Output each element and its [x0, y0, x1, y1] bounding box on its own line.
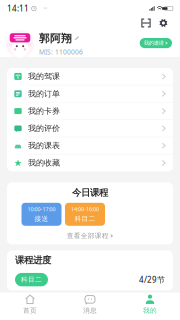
button[interactable]: 消息 [60, 292, 120, 320]
staticText: 我的评价 [28, 123, 60, 133]
staticText: 我的驾课 [28, 71, 60, 81]
staticText: MIS: 1100006 [39, 47, 83, 56]
button[interactable]: 我的评价 [7, 120, 173, 137]
staticText: 10:00-17:00 [27, 206, 55, 213]
button[interactable]: 我的 [120, 292, 180, 320]
staticText: 我的邀请 [144, 40, 164, 46]
button[interactable]: 设置 [159, 18, 168, 28]
staticText: 14:00-16:00 [71, 206, 99, 213]
staticText: 我的订单 [28, 89, 60, 99]
button[interactable]: 查看全部课程 [67, 232, 113, 240]
staticText: 查看全部课程 [67, 232, 109, 240]
staticText: 科目二 [74, 215, 95, 223]
button[interactable]: 10:00-17:00 [21, 203, 61, 226]
staticText: 我的收藏 [28, 158, 60, 168]
staticText: 课程进度 [15, 254, 51, 266]
staticText: 郭阿翔 [39, 32, 72, 45]
button[interactable]: 首页 [0, 292, 60, 320]
staticText: 14:11 [7, 3, 29, 14]
button[interactable]: 我的邀请 [140, 38, 172, 48]
staticText: 我的 [143, 307, 157, 315]
staticText: 首页 [23, 307, 37, 315]
staticText: 我的卡券 [28, 106, 60, 116]
staticText: 接送 [34, 215, 48, 223]
button[interactable]: 我的课表 [7, 137, 173, 154]
staticText: 4/29节 [139, 274, 165, 285]
button[interactable]: 我的卡券 [7, 103, 173, 120]
staticText: 我的课表 [28, 141, 60, 150]
button[interactable]: 我的订单 [7, 85, 173, 103]
staticText: 消息 [83, 307, 97, 315]
staticText: 今日课程 [72, 187, 108, 198]
button[interactable]: 我的驾课 [7, 68, 173, 85]
button[interactable]: 14:00-16:00 [65, 203, 105, 226]
button[interactable]: 我的收藏 [7, 154, 173, 171]
button[interactable]: 扫一扫 [141, 18, 151, 27]
staticText: 科目二 [21, 275, 42, 284]
staticText: ·· [43, 3, 47, 14]
